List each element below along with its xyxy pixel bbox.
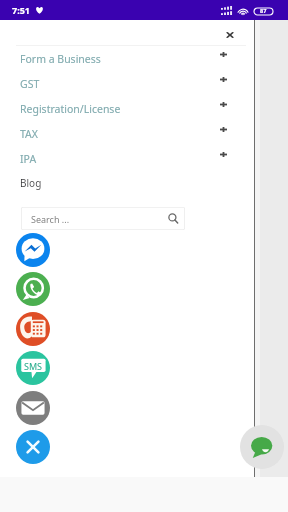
button[interactable]: SMS (16, 351, 50, 385)
button[interactable]: TAX (0, 121, 254, 146)
button[interactable]: IPA (0, 146, 254, 171)
staticText: Form a Business (20, 52, 101, 66)
button[interactable]: GST (0, 71, 254, 96)
button[interactable]: Search ... (21, 207, 185, 230)
staticText: Registration/License (20, 102, 121, 116)
button[interactable]: Messenger (16, 233, 50, 267)
staticText: Blog (20, 176, 42, 190)
staticText: GST (20, 77, 40, 91)
button[interactable]: Blog (0, 170, 254, 195)
button[interactable]: Close menu (220, 25, 240, 45)
button[interactable]: WhatsApp (16, 272, 50, 306)
staticText: 87 (260, 7, 267, 15)
staticText: 7:51 (12, 4, 30, 16)
staticText: IPA (20, 152, 37, 166)
button[interactable]: Chat (240, 425, 284, 469)
button[interactable]: Email (16, 391, 50, 425)
staticText: Search ... (31, 213, 70, 225)
staticText: SMS (24, 360, 43, 372)
button[interactable]: Form a Business (0, 46, 254, 71)
staticText: TAX (20, 127, 38, 141)
button[interactable]: Close (16, 430, 50, 464)
button[interactable]: Registration/License (0, 96, 254, 121)
button[interactable]: Call (16, 312, 50, 346)
